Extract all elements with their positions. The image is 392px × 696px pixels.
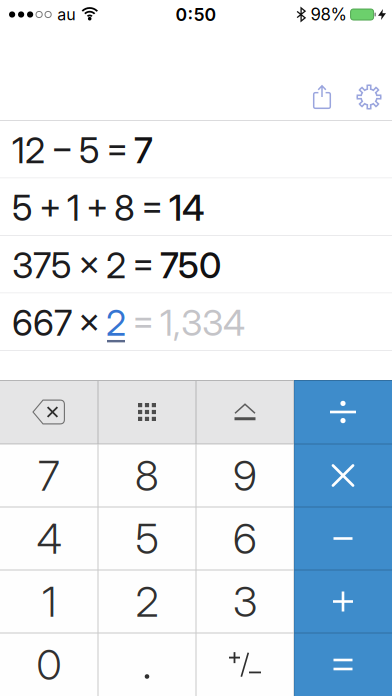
- button[interactable]: 2: [98, 570, 196, 633]
- button[interactable]: 4: [0, 507, 98, 570]
- staticText: 5 + 1 + 8 =: [12, 186, 169, 229]
- staticText: 7: [134, 129, 153, 172]
- button[interactable]: [0, 380, 98, 444]
- button[interactable]: [309, 83, 335, 111]
- staticText: 0: [36, 639, 61, 690]
- button[interactable]: 8: [98, 444, 196, 507]
- button[interactable]: 375 × 2 =: [0, 236, 392, 293]
- button[interactable]: 7: [0, 444, 98, 507]
- button[interactable]: 0: [0, 633, 98, 696]
- staticText: 375 × 2 =: [12, 244, 160, 287]
- button[interactable]: [356, 83, 382, 111]
- staticText: 4: [36, 513, 61, 564]
- staticText: 14: [169, 186, 205, 229]
- button[interactable]: [294, 507, 392, 570]
- button[interactable]: 6: [196, 507, 294, 570]
- button[interactable]: [294, 444, 392, 507]
- button[interactable]: [196, 633, 294, 696]
- button[interactable]: 5 + 1 + 8 =: [0, 178, 392, 236]
- button[interactable]: [98, 380, 196, 444]
- staticText: 0:50: [175, 4, 216, 25]
- staticText: 98%: [311, 4, 347, 25]
- staticText: 12 − 5 =: [12, 129, 134, 172]
- staticText: 6: [233, 513, 257, 564]
- button[interactable]: [294, 633, 392, 696]
- staticText: 3: [233, 576, 257, 627]
- button[interactable]: 12 − 5 =: [0, 121, 392, 178]
- button[interactable]: 9: [196, 444, 294, 507]
- button[interactable]: [98, 633, 196, 696]
- staticText: 9: [233, 450, 257, 501]
- staticText: 2: [135, 576, 158, 627]
- staticText: 7: [38, 450, 60, 501]
- staticText: 5: [135, 513, 158, 564]
- staticText: au: [57, 5, 75, 24]
- button[interactable]: 1: [0, 570, 98, 633]
- button[interactable]: 667 ×: [0, 293, 392, 351]
- button[interactable]: [294, 380, 392, 444]
- staticText: 8: [135, 450, 159, 501]
- button[interactable]: 3: [196, 570, 294, 633]
- staticText: 2: [106, 301, 126, 344]
- staticText: = 1,334: [126, 301, 245, 344]
- staticText: 1: [42, 576, 56, 627]
- staticText: 667 ×: [12, 301, 106, 344]
- staticText: 750: [160, 244, 221, 287]
- button[interactable]: [294, 570, 392, 633]
- button[interactable]: [196, 380, 294, 444]
- button[interactable]: 5: [98, 507, 196, 570]
